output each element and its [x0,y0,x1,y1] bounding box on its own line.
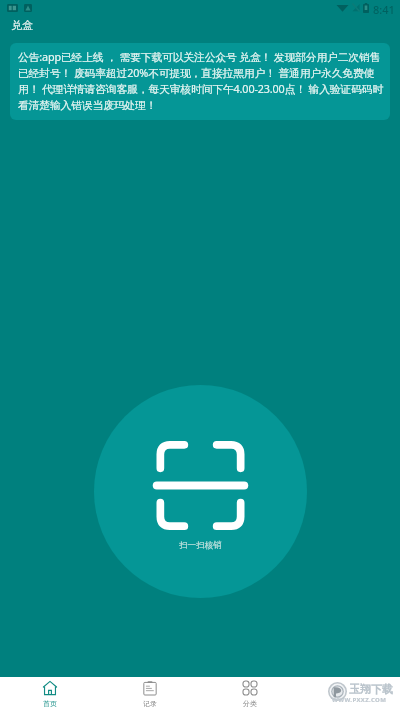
staticText: 首页 [43,699,57,708]
button[interactable]: 扫一扫核销 [94,385,307,598]
button[interactable]: 分类 [200,677,300,711]
staticText: 分类 [243,699,257,708]
staticText: WWW.PXXZ.COM [332,696,387,704]
staticText: 兑盒 [11,18,33,32]
button[interactable]: 公告:app已经上线 ， 需要下载可以关注公众号 兑盒！ 发现部分用户二次销售已… [10,43,390,120]
staticText: 扫一扫核销 [179,540,222,551]
staticText: 8:41 [373,2,395,15]
staticText: 记录 [143,699,157,708]
button[interactable]: 记录 [100,677,200,711]
staticText: 玉翔下载 [349,682,393,696]
staticText: 公告:app已经上线 ， 需要下载可以关注公众号 兑盒！ 发现部分用户二次销售已… [18,49,387,112]
button[interactable]: 首页 [0,677,100,711]
